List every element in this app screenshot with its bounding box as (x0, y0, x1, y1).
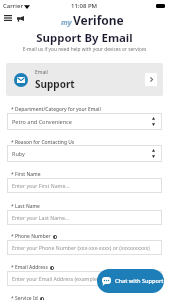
button[interactable]: Petro and Convenience (7, 113, 162, 130)
staticText: Support (35, 77, 75, 91)
staticText: Support By Email (0, 30, 169, 46)
staticText: Chat with Support (115, 277, 164, 285)
staticText: 11:08 PM (71, 2, 98, 10)
staticText: * Service Id (11, 295, 38, 300)
staticText: Verifone (73, 12, 124, 28)
button[interactable]: Enter your Last Name... (7, 210, 162, 225)
button[interactable]: Menu (2, 12, 14, 24)
button[interactable]: Enter your First Name... (7, 178, 162, 193)
button[interactable]: Enter your Email Address (example@exampl… (7, 271, 162, 286)
button[interactable]: Enter your Phone Number (xxx-xxx-xxxx) o… (7, 240, 162, 255)
staticText: * Reason for Contacting Us (11, 139, 75, 146)
staticText: E-mail us if you need help with your dev… (0, 46, 169, 53)
staticText: * Last Name (11, 203, 40, 210)
button[interactable]: Ruby (7, 145, 162, 162)
staticText: Ruby (12, 150, 25, 157)
staticText: Petro and Convenience (12, 118, 72, 125)
staticText: Enter your Last Name... (12, 214, 69, 221)
staticText: Email (35, 69, 48, 76)
staticText: Carrier (3, 2, 23, 10)
staticText: * Email Address (11, 264, 48, 271)
button[interactable]: Chat with Support (97, 269, 164, 293)
staticText: Enter your Phone Number (xxx-xxx-xxxx) o… (12, 244, 150, 251)
button[interactable]: Announcements (14, 12, 26, 24)
staticText: Enter your First Name... (12, 182, 70, 189)
button[interactable]: Email (6, 63, 163, 96)
staticText: * Department/Category for your Email (11, 106, 101, 113)
staticText: my (61, 17, 72, 27)
staticText: * Phone Number (11, 233, 51, 240)
staticText: * First Name (11, 171, 41, 178)
staticText: Enter your Email Address (example@exampl… (12, 275, 136, 282)
